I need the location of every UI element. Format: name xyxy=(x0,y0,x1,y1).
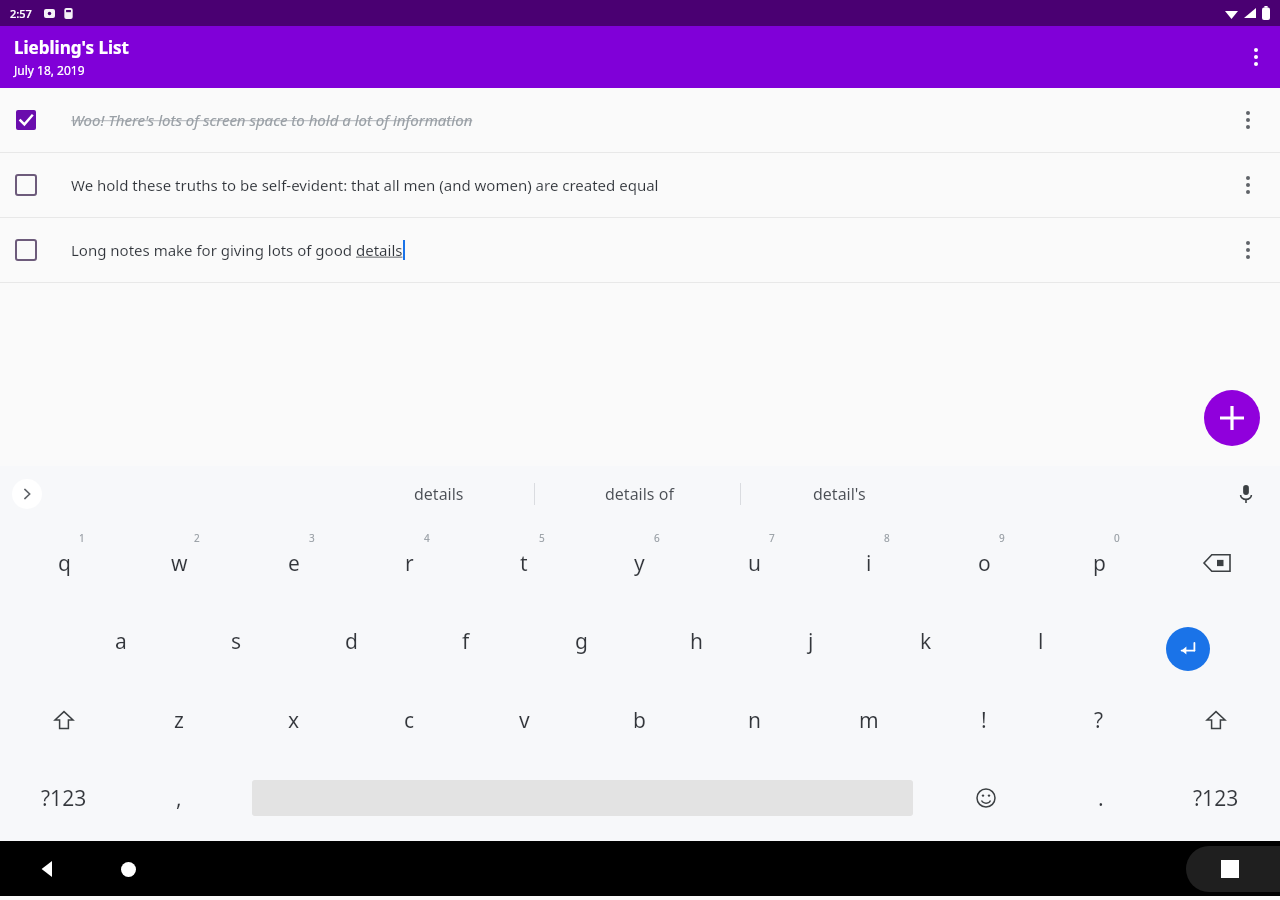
staticText: c xyxy=(404,706,415,735)
button[interactable]: k xyxy=(881,603,971,679)
button[interactable]: a xyxy=(76,603,166,679)
staticText: g xyxy=(575,627,588,656)
staticText: 0 xyxy=(1114,531,1120,545)
staticText: v xyxy=(519,706,530,735)
button[interactable]: r xyxy=(364,525,454,601)
staticText: ! xyxy=(981,706,987,735)
staticText: 8 xyxy=(884,531,890,545)
button[interactable]: Checked xyxy=(16,110,36,130)
button[interactable]: w xyxy=(134,525,224,601)
staticText: r xyxy=(405,549,414,578)
button[interactable]: g xyxy=(536,603,626,679)
staticText: a xyxy=(115,627,127,656)
staticText: ? xyxy=(1094,706,1104,735)
button[interactable]: Item options xyxy=(1216,153,1280,217)
button[interactable]: u xyxy=(709,525,799,601)
button[interactable]: d xyxy=(306,603,396,679)
button[interactable]: More options xyxy=(1232,33,1280,81)
button[interactable]: Back xyxy=(24,845,72,893)
staticText: Woo! There's lots of screen space to hol… xyxy=(71,110,473,130)
staticText: 2:57 xyxy=(10,6,32,21)
staticText: n xyxy=(748,706,761,735)
staticText: details of xyxy=(605,483,674,505)
button[interactable]: Item options xyxy=(1216,88,1280,152)
staticText: 1 xyxy=(79,531,85,545)
staticText: 2 xyxy=(194,531,200,545)
button[interactable]: f xyxy=(421,603,511,679)
button[interactable]: y xyxy=(594,525,684,601)
button[interactable]: Home xyxy=(104,845,152,893)
button[interactable]: q xyxy=(19,525,109,601)
button[interactable]: ! xyxy=(939,682,1029,758)
button[interactable]: ? xyxy=(1054,682,1144,758)
button[interactable]: Item options xyxy=(1216,218,1280,282)
staticText: details xyxy=(414,483,464,505)
staticText: l xyxy=(1038,627,1044,656)
staticText: w xyxy=(171,549,188,578)
button[interactable]: Unchecked xyxy=(0,153,1280,217)
staticText: y xyxy=(634,549,645,578)
staticText: i xyxy=(866,549,872,578)
button[interactable]: p xyxy=(1054,525,1144,601)
button[interactable]: c xyxy=(364,682,454,758)
button[interactable]: Add item xyxy=(1204,390,1260,446)
staticText: ?123 xyxy=(1193,784,1239,813)
button[interactable]: details of xyxy=(549,466,729,522)
staticText: 3 xyxy=(309,531,315,545)
staticText: d xyxy=(345,627,358,656)
button[interactable]: s xyxy=(191,603,281,679)
button[interactable]: Shift xyxy=(24,690,104,750)
button[interactable]: z xyxy=(134,682,224,758)
button[interactable]: v xyxy=(479,682,569,758)
button[interactable]: i xyxy=(824,525,914,601)
button[interactable]: Checked xyxy=(0,88,1280,152)
button[interactable]: h xyxy=(651,603,741,679)
button[interactable]: Enter xyxy=(1166,627,1210,671)
staticText: s xyxy=(231,627,242,656)
button[interactable]: t xyxy=(479,525,569,601)
button[interactable]: Voice input xyxy=(1228,476,1264,512)
button[interactable]: detail's xyxy=(749,466,929,522)
button[interactable]: n xyxy=(709,682,799,758)
staticText: z xyxy=(174,706,184,735)
staticText: 6 xyxy=(654,531,660,545)
staticText: 7 xyxy=(769,531,775,545)
button[interactable]: Unchecked xyxy=(0,218,1280,282)
button[interactable]: Backspace xyxy=(1177,533,1257,593)
button[interactable]: ?123 xyxy=(1171,760,1261,836)
staticText: We hold these truths to be self-evident:… xyxy=(71,175,659,195)
button[interactable]: Emoji xyxy=(946,768,1026,828)
staticText: f xyxy=(462,627,470,656)
staticText: p xyxy=(1093,549,1106,578)
staticText: o xyxy=(978,549,991,578)
staticText: ?123 xyxy=(41,784,87,813)
staticText: k xyxy=(920,627,932,656)
staticText: 4 xyxy=(424,531,430,545)
staticText: e xyxy=(288,549,300,578)
button[interactable]: . xyxy=(1056,760,1146,836)
button[interactable]: Recent apps xyxy=(1186,846,1280,892)
button[interactable]: j xyxy=(766,603,856,679)
button[interactable]: l xyxy=(996,603,1086,679)
button[interactable]: x xyxy=(249,682,339,758)
staticText: u xyxy=(748,549,761,578)
button[interactable]: Unchecked xyxy=(16,175,36,195)
staticText: July 18, 2019 xyxy=(14,62,85,78)
staticText: m xyxy=(859,706,879,735)
staticText: t xyxy=(520,549,528,578)
button[interactable]: , xyxy=(134,760,224,836)
staticText: detail's xyxy=(813,483,866,505)
button[interactable]: b xyxy=(594,682,684,758)
button[interactable]: e xyxy=(249,525,339,601)
button[interactable]: Shift xyxy=(1176,690,1256,750)
button[interactable]: ?123 xyxy=(19,760,109,836)
button[interactable]: o xyxy=(939,525,1029,601)
staticText: 5 xyxy=(539,531,545,545)
staticText: , xyxy=(176,784,182,813)
button[interactable]: Unchecked xyxy=(16,240,36,260)
staticText: 9 xyxy=(999,531,1005,545)
button[interactable]: m xyxy=(824,682,914,758)
button[interactable]: details xyxy=(349,466,529,522)
button[interactable]: Expand toolbar xyxy=(12,479,42,509)
